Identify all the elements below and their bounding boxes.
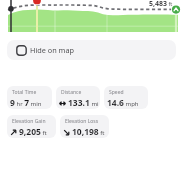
staticText: 14.6 mph <box>107 97 139 109</box>
button[interactable]: Elevation Loss <box>60 115 109 138</box>
button[interactable]: Hide on map <box>7 40 176 60</box>
staticText: Elevation Gain <box>12 118 46 125</box>
staticText: 133.1 mi <box>68 97 99 109</box>
staticText: 9 hr 7 min <box>10 97 42 109</box>
staticText: 5,483 ft <box>149 0 173 9</box>
staticText: Distance <box>61 89 82 96</box>
button[interactable]: Total Time <box>7 86 52 109</box>
staticText: Hide on map <box>30 45 75 55</box>
staticText: 9,205 ft <box>19 126 47 138</box>
staticText: Total Time <box>12 89 37 96</box>
staticText: 10,198 ft <box>72 126 105 138</box>
button[interactable]: Distance <box>56 86 100 109</box>
button[interactable]: Elevation Gain <box>7 115 56 138</box>
staticText: Speed <box>109 89 124 96</box>
staticText: Elevation Loss <box>65 118 99 125</box>
button[interactable]: Speed <box>104 86 148 109</box>
